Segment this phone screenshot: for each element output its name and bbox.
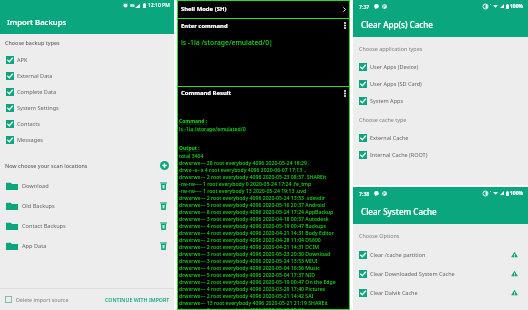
staticText: drwxrwx--- 4 root everybody 4096 2020-04…	[179, 229, 334, 236]
staticText: Command Result	[181, 89, 232, 97]
button[interactable]: Contacts	[0, 116, 174, 132]
staticText: Contact Backups	[22, 222, 66, 230]
staticText: drwxrwx--- 5 root everybody 4096 2020-05…	[179, 201, 325, 208]
staticText: -rw-rw---- 1 root everybody 13 2020-05-2…	[179, 187, 307, 194]
button[interactable]: User Apps (Device)	[353, 58, 528, 75]
button[interactable]: CONTINUE WITH IMPORT	[105, 296, 170, 303]
button[interactable]: External Cache	[353, 129, 528, 146]
staticText: External Data	[17, 72, 53, 80]
staticText: Contacts	[17, 120, 40, 128]
staticText: Clear App(s) Cache	[361, 19, 434, 30]
staticText: Enter command	[181, 22, 228, 30]
button[interactable]: Remove Contact Backups	[160, 222, 167, 230]
staticText: Command :	[179, 118, 208, 125]
staticText: 12:10 PM	[148, 2, 170, 9]
staticText: Output :	[179, 145, 200, 152]
staticText: Shell Mode (SH)	[181, 5, 227, 13]
staticText: Complete Data	[17, 88, 57, 96]
staticText: System Settings	[17, 104, 59, 112]
staticText: CONTINUE WITH IMPORT	[105, 296, 170, 303]
staticText: Delete import source	[16, 296, 69, 303]
button[interactable]: Old Backups	[0, 196, 174, 216]
staticText: drwxrwx--- 2 root everybody 4096 2020-04…	[179, 236, 321, 243]
staticText: Clear Downloaded System Cache	[370, 270, 455, 277]
button[interactable]: Add scan location	[160, 161, 169, 170]
staticText: '	[490, 190, 492, 196]
staticText: drwxrwx--- 2 root everybody 4096 2020-05…	[179, 173, 327, 180]
staticText: drwxrwx--- 3 root everybody 4096 2020-05…	[179, 250, 331, 257]
staticText: 7:38	[359, 190, 370, 197]
staticText: ls -1la /storage/emulated/0	[179, 125, 246, 132]
staticText: 3G	[130, 3, 135, 8]
staticText: drwxrwx--- 8 root everybody 4096 2020-05…	[179, 208, 334, 215]
button[interactable]: Clear /cache partition	[353, 245, 528, 264]
staticText: Choose Options	[359, 232, 400, 239]
button[interactable]: External Data	[0, 68, 174, 84]
staticText: Import Backups	[7, 17, 67, 28]
staticText: Clear System Cache	[361, 206, 437, 217]
staticText: drwxrwx--- 3 root everybody 4096 2020-04…	[179, 215, 329, 222]
staticText: drwxrwx--- 2 root everybody 4096 2020-04…	[179, 243, 319, 250]
button[interactable]: Messages	[0, 132, 174, 148]
button[interactable]: Shell Mode (SH)	[177, 0, 350, 18]
staticText: Messages	[17, 136, 43, 144]
button[interactable]: APK	[0, 52, 174, 68]
staticText: App Data	[22, 242, 47, 250]
staticText: Choose cache type	[359, 116, 407, 123]
button[interactable]: Command options	[344, 22, 346, 29]
staticText: drwxrwx--- 4 root everybody 4096 2020-03…	[179, 285, 326, 292]
staticText: User Apps (SD Card)	[370, 80, 422, 87]
staticText: Choose backup types	[5, 39, 60, 46]
button[interactable]: User Apps (SD Card)	[353, 75, 528, 92]
staticText: 7:37	[359, 3, 370, 10]
staticText: drwxrwx--- 28 root everybody 4096 2020-0…	[179, 159, 310, 166]
button[interactable]: Remove Download	[160, 182, 167, 190]
staticText: drwxrwx--- 3 root everybody 4096 2020-05…	[179, 257, 318, 264]
staticText: Now choose your scan locations	[5, 162, 88, 169]
staticText: drwxrwx--- 4 root everybody 4096 2020-05…	[179, 222, 326, 229]
staticText: Old Backups	[22, 202, 55, 210]
staticText: Internal Cache (ROOT)	[370, 151, 428, 158]
button[interactable]: Download	[0, 176, 174, 196]
button[interactable]: Internal Cache (ROOT)	[353, 146, 528, 163]
button[interactable]: Complete Data	[0, 84, 174, 100]
staticText: External Cache	[370, 134, 409, 141]
staticText: drwxrwx--- 5 root everybody 4096 2020-05…	[179, 271, 315, 278]
staticText: Choose application types	[359, 45, 423, 52]
staticText: Download	[22, 182, 49, 190]
staticText: Clear /cache partition	[370, 251, 426, 258]
staticText: drwxrwx--- 13 root everybody 4096 2020-0…	[179, 299, 328, 306]
staticText: drwxrwx--- 2 root everybody 4096 2020-05…	[179, 194, 325, 201]
staticText: drwxrwx--- 2 root everybody 4096 2020-05…	[179, 292, 314, 299]
staticText: 100%	[510, 190, 524, 197]
staticText: -rw-rw---- 1 root everybody 0 2020-05-24…	[179, 180, 312, 187]
button[interactable]: Remove App Data	[160, 242, 167, 250]
button[interactable]: Remove Old Backups	[160, 202, 167, 210]
staticText: System Apps	[370, 97, 404, 104]
staticText: APK	[17, 56, 28, 64]
staticText: total 3404	[179, 152, 204, 159]
staticText: drwx--x--x 4 root everybody 4096 2020-06…	[179, 166, 307, 173]
button[interactable]: System Apps	[353, 92, 528, 109]
staticText: 100%	[510, 3, 524, 10]
staticText: Clear Dalvik Cache	[370, 289, 418, 296]
button[interactable]: Contact Backups	[0, 216, 174, 236]
button[interactable]: Clear Dalvik Cache	[353, 283, 528, 302]
staticText: User Apps (Device)	[370, 63, 419, 70]
button[interactable]: Result options	[344, 90, 346, 97]
staticText: drwxrwx--- 2 root everybody 4096 2020-05…	[179, 306, 305, 310]
staticText: drwxrwx--- 2 root everybody 4096 2020-05…	[179, 278, 336, 285]
staticText: drwxrwx--- 4 root everybody 4096 2020-05…	[179, 264, 320, 271]
button[interactable]: Clear Downloaded System Cache	[353, 264, 528, 283]
button[interactable]: App Data	[0, 236, 174, 256]
staticText: ls -1la /storage/emulated/0|	[181, 38, 273, 47]
staticText: '	[490, 3, 492, 9]
button[interactable]: System Settings	[0, 100, 174, 116]
button[interactable]: Delete import source	[5, 296, 69, 303]
